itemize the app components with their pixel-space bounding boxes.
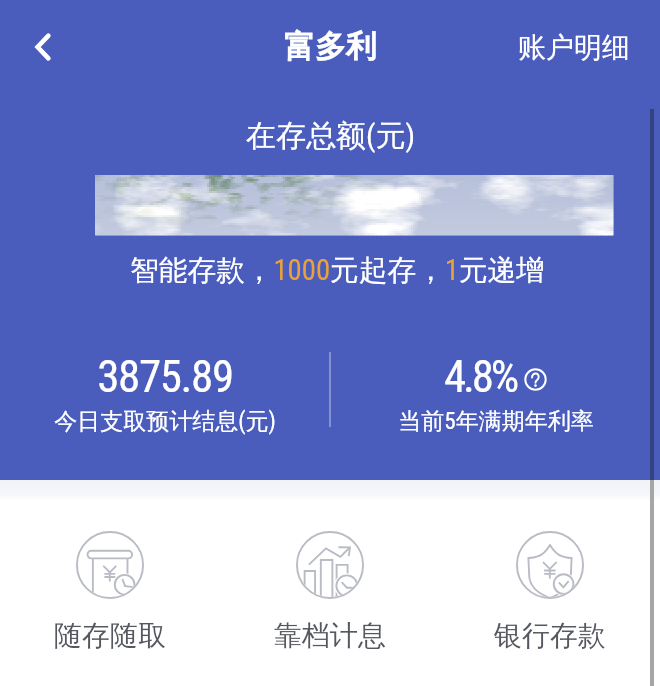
staticText: 3875.89 [97,350,233,403]
button[interactable]: 账户明细 [502,18,646,77]
staticText: 在存总额(元) [246,117,415,155]
button[interactable]: 靠档计息 [220,531,440,653]
staticText: 账户明细 [518,30,630,65]
staticText: 当前5年满期年利率 [398,407,594,436]
staticText: 智能存款，1000元起存，1元递增 [130,252,546,288]
button[interactable]: 随存随取 [0,531,220,653]
button[interactable]: 银行存款 [440,531,660,653]
staticText: 靠档计息 [274,618,386,653]
staticText: 富多利 [284,27,377,66]
staticText: 4.8% [444,350,516,403]
staticText: 今日支取预计结息(元) [54,407,276,436]
button[interactable]: Back [14,18,72,76]
staticText: 随存随取 [54,618,166,653]
staticText: 银行存款 [494,618,606,653]
button[interactable]: Interest rate info [524,368,547,391]
